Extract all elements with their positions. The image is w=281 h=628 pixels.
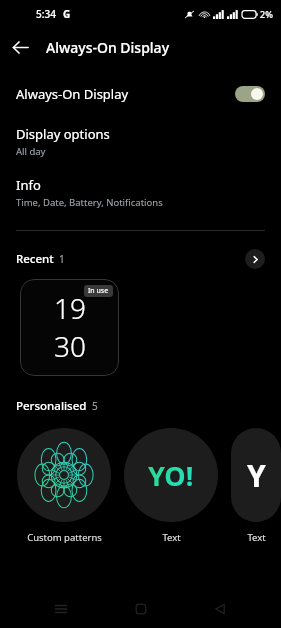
- staticText: Custom patterns: [27, 531, 102, 544]
- staticText: Display options: [16, 125, 110, 143]
- button[interactable]: 19: [20, 279, 119, 376]
- button[interactable]: Back: [0, 28, 40, 66]
- staticText: Personalised: [16, 398, 87, 414]
- staticText: Text: [162, 531, 181, 544]
- button[interactable]: Y: [231, 428, 281, 544]
- staticText: 30: [54, 327, 86, 365]
- button[interactable]: Info: [0, 167, 281, 218]
- staticText: 1: [59, 252, 65, 266]
- staticText: YO!: [148, 457, 194, 494]
- staticText: Y: [247, 455, 266, 496]
- staticText: Info: [16, 176, 41, 194]
- button[interactable]: Home: [122, 590, 160, 628]
- button[interactable]: Always-On Display: [0, 72, 281, 116]
- staticText: 5:34: [36, 7, 56, 21]
- button[interactable]: See more recent: [245, 249, 265, 269]
- button[interactable]: YO!: [124, 428, 218, 544]
- staticText: Text: [247, 531, 266, 544]
- staticText: Always-On Display: [16, 85, 129, 103]
- staticText: 2%: [260, 8, 273, 20]
- staticText: In use: [88, 286, 109, 296]
- button[interactable]: Display options: [0, 116, 281, 167]
- staticText: G: [63, 7, 71, 21]
- staticText: 19: [54, 289, 86, 327]
- button[interactable]: Custom patterns: [17, 428, 111, 544]
- staticText: 5: [92, 399, 98, 413]
- staticText: Always-On Display: [46, 38, 170, 57]
- button[interactable]: Recent apps: [42, 590, 80, 628]
- staticText: All day: [16, 145, 46, 158]
- staticText: Recent: [16, 251, 54, 267]
- button[interactable]: Back: [201, 590, 239, 628]
- staticText: Time, Date, Battery, Notifications: [16, 196, 163, 209]
